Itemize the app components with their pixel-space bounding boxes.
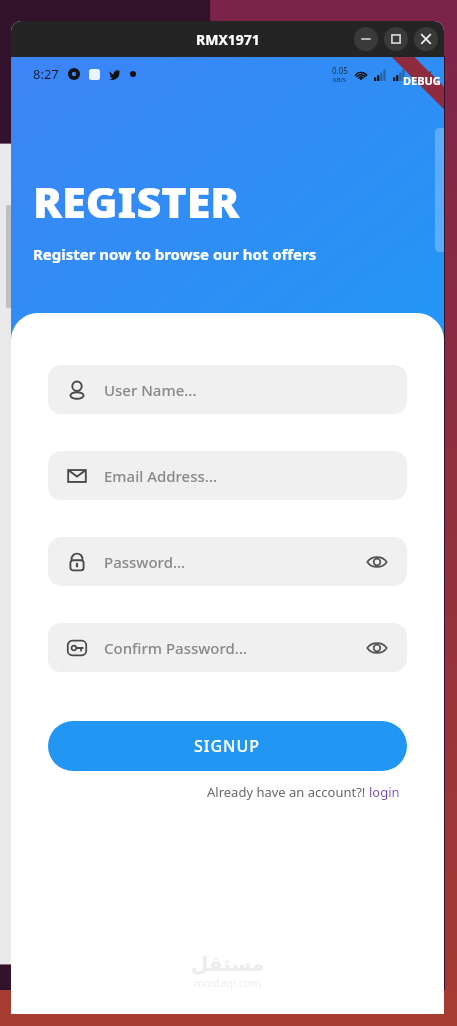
button[interactable]: login [369, 783, 400, 801]
button[interactable]: Toggle password visibility [365, 636, 389, 660]
staticText: 0.05 [332, 65, 348, 76]
button[interactable]: Password... [48, 537, 407, 586]
staticText: REGISTER [33, 172, 240, 231]
staticText: Already have an account?! [207, 783, 369, 801]
button[interactable]: Toggle password visibility [365, 550, 389, 574]
button[interactable]: Confirm Password... [48, 623, 407, 672]
staticText: DEBUG [403, 73, 441, 88]
staticText: Password... [104, 552, 365, 572]
staticText: 8:27 [33, 65, 59, 83]
staticText: KB/S [333, 76, 347, 84]
staticText: 22% [412, 67, 434, 82]
button[interactable]: Close [414, 27, 438, 51]
staticText: Email Address... [104, 466, 389, 486]
staticText: Confirm Password... [104, 638, 365, 658]
button[interactable]: Minimize [354, 27, 378, 51]
staticText: SIGNUP [194, 735, 261, 757]
staticText: login [369, 783, 400, 801]
staticText: RMX1971 [196, 30, 260, 49]
staticText: mostaql.com [194, 975, 262, 990]
staticText: مستقل [191, 952, 265, 975]
button[interactable]: Maximize [384, 27, 408, 51]
button[interactable]: SIGNUP [48, 721, 407, 771]
staticText: Register now to browse our hot offers [33, 244, 317, 264]
button[interactable]: Email Address... [48, 451, 407, 500]
button[interactable]: User Name... [48, 365, 407, 414]
staticText: User Name... [104, 380, 389, 400]
